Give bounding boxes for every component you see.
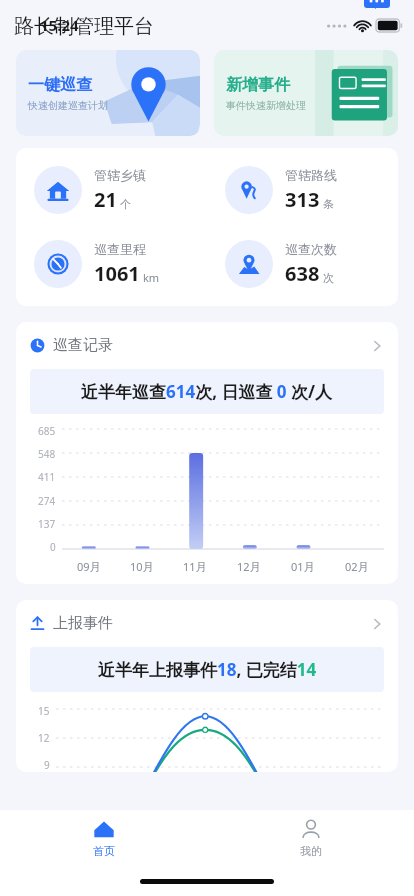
- staticText: 次: [323, 271, 334, 285]
- staticText: 9: [44, 758, 50, 772]
- staticText: 管辖路线: [285, 167, 337, 183]
- button[interactable]: 巡查次数: [207, 240, 398, 288]
- staticText: 21: [94, 186, 117, 213]
- staticText: 一键巡查: [28, 75, 92, 95]
- staticText: km: [143, 270, 160, 285]
- button[interactable]: 巡查记录: [16, 322, 398, 369]
- staticText: 15:24: [40, 15, 79, 35]
- button[interactable]: 管辖路线: [207, 166, 398, 214]
- staticText: 1061: [94, 260, 140, 287]
- button[interactable]: 新增事件: [214, 50, 398, 136]
- staticText: 快速创建巡查计划: [28, 99, 108, 112]
- staticText: 我的: [300, 844, 322, 858]
- staticText: 09月: [77, 559, 101, 574]
- staticText: 巡查里程: [94, 241, 146, 257]
- staticText: 首页: [93, 844, 115, 858]
- staticText: 0: [50, 540, 56, 554]
- staticText: 路长制管理平台: [14, 14, 154, 39]
- staticText: 313: [285, 186, 320, 213]
- button[interactable]: 一键巡查: [16, 50, 200, 136]
- staticText: 10月: [130, 559, 154, 574]
- staticText: 11月: [183, 559, 207, 574]
- staticText: 上报事件: [53, 614, 113, 633]
- staticText: 管辖乡镇: [94, 167, 146, 183]
- staticText: 685: [38, 424, 56, 438]
- button[interactable]: 上报事件: [16, 600, 398, 647]
- staticText: 01月: [291, 559, 315, 574]
- staticText: 个: [120, 197, 131, 211]
- staticText: 638: [285, 260, 320, 287]
- staticText: 02月: [345, 559, 369, 574]
- staticText: 近半年上报事件18, 已完结14: [98, 658, 317, 681]
- staticText: 事件快速新增处理: [226, 99, 306, 112]
- button[interactable]: 管辖乡镇: [16, 166, 207, 214]
- staticText: 条: [323, 197, 334, 211]
- button[interactable]: 巡查里程: [16, 240, 207, 288]
- staticText: 巡查记录: [53, 336, 113, 355]
- staticText: 548: [38, 447, 56, 461]
- staticText: 巡查次数: [285, 241, 337, 257]
- button[interactable]: 首页: [0, 810, 207, 866]
- staticText: 274: [38, 494, 56, 508]
- staticText: 近半年巡查614次, 日巡查 0 次/人: [81, 380, 333, 403]
- staticText: 12: [38, 731, 50, 745]
- staticText: 15: [38, 704, 50, 718]
- staticText: 137: [38, 517, 56, 531]
- staticText: 新增事件: [226, 75, 290, 95]
- staticText: 411: [38, 470, 56, 484]
- staticText: 12月: [237, 559, 261, 574]
- button[interactable]: 我的: [207, 810, 414, 866]
